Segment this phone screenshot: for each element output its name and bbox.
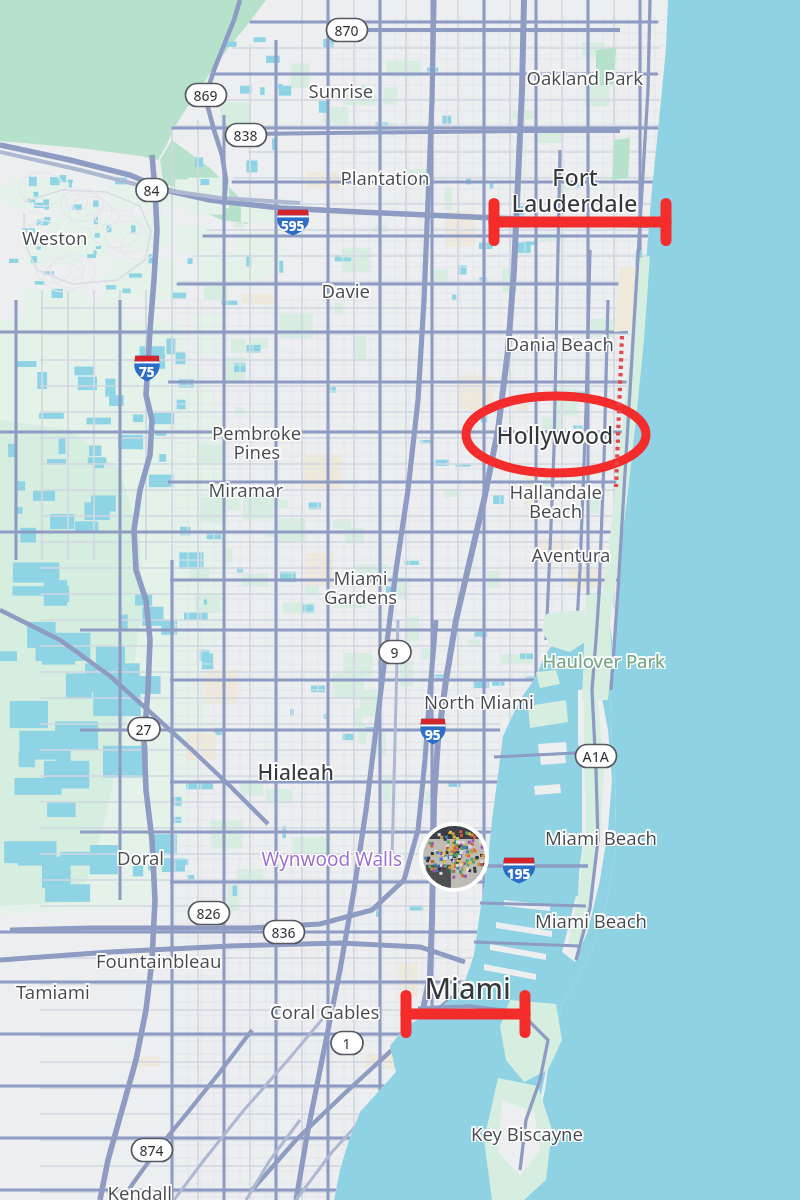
button[interactable]: Fort Lauderdale distance annotation: [389, 179, 575, 223]
button[interactable]: Hollywood circled annotation: [460, 392, 650, 476]
button[interactable]: Miami distance annotation: [330, 968, 463, 1012]
button[interactable]: Wynwood Walls photo marker: [388, 802, 458, 871]
button[interactable]: Map of South Florida: [0, 0, 800, 1200]
